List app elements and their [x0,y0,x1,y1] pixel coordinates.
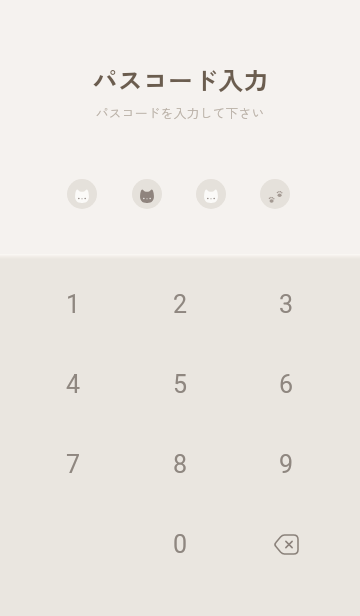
button[interactable]: 1 [25,266,121,342]
button[interactable]: 0 [132,506,228,582]
staticText: 8 [173,450,188,479]
staticText: 1 [66,290,81,319]
staticText: 0 [173,530,188,559]
button[interactable]: Delete [238,506,334,582]
button[interactable]: 6 [238,346,334,422]
staticText: 7 [66,450,81,479]
staticText: パスコードを入力して下さい [95,103,265,122]
staticText: 6 [279,370,294,399]
staticText: パスコード入力 [92,61,269,95]
staticText: 3 [279,290,294,319]
button[interactable]: 9 [238,426,334,502]
staticText: 2 [173,290,188,319]
button[interactable]: 7 [25,426,121,502]
staticText: 4 [66,370,81,399]
button[interactable]: 3 [238,266,334,342]
button[interactable]: 4 [25,346,121,422]
staticText: 5 [173,370,188,399]
button[interactable]: 8 [132,426,228,502]
staticText: 9 [279,450,294,479]
button[interactable]: 2 [132,266,228,342]
button[interactable]: 5 [132,346,228,422]
